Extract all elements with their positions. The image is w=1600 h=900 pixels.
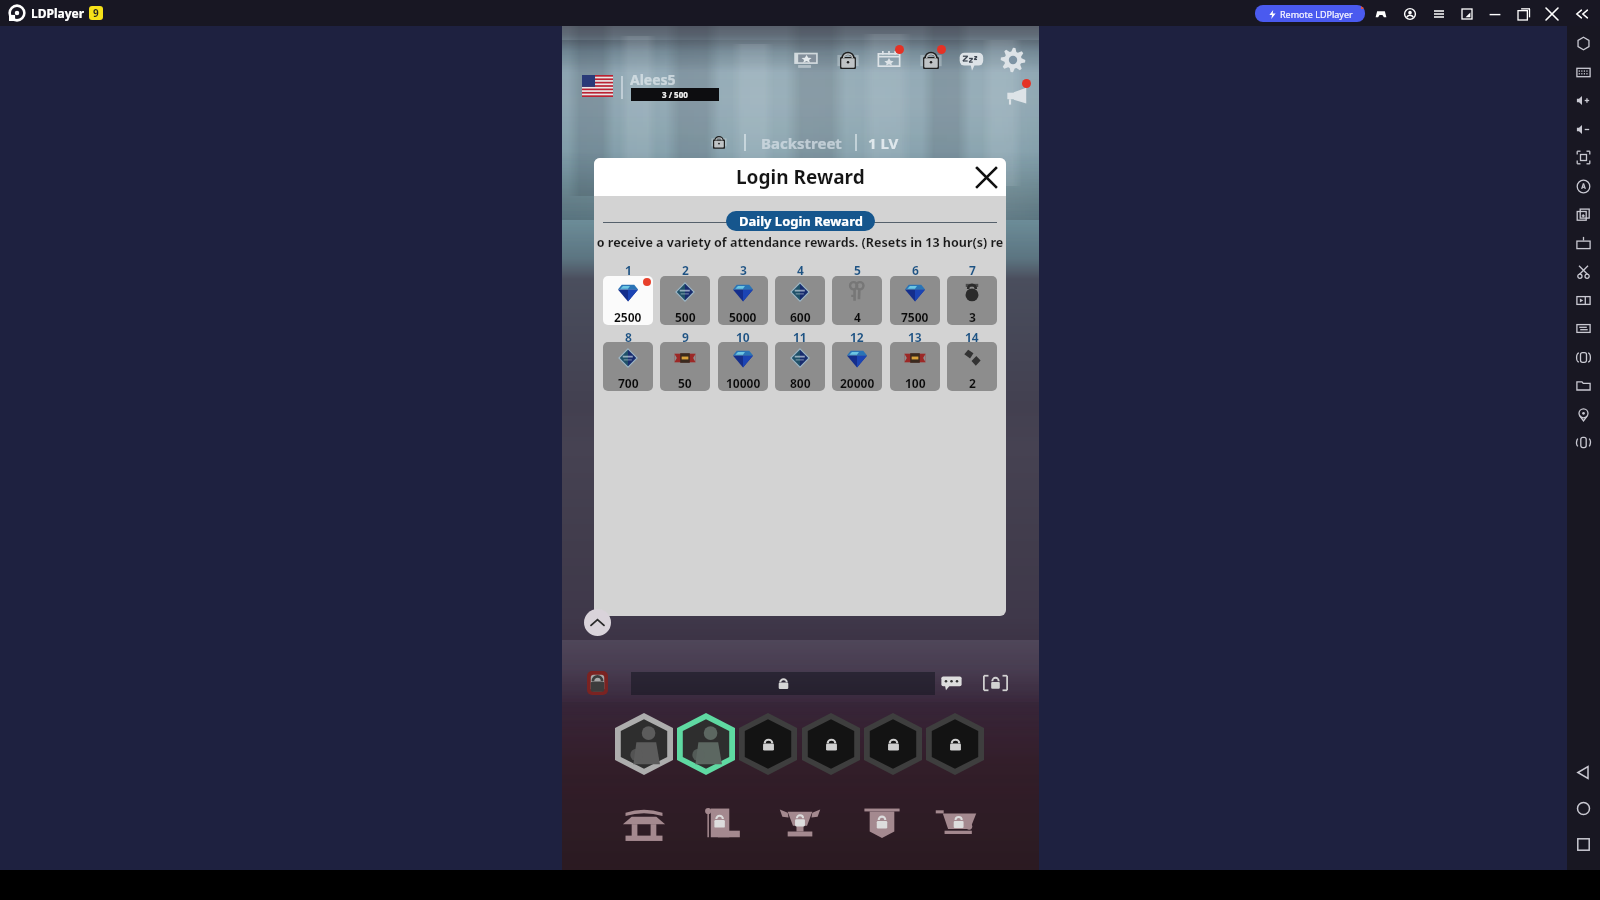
button[interactable]: Shop bbox=[926, 796, 986, 848]
staticText: 2 bbox=[682, 262, 689, 278]
button[interactable]: Stage locked bbox=[709, 132, 729, 152]
button[interactable]: 600 bbox=[775, 276, 825, 325]
button[interactable]: Settings bbox=[999, 46, 1027, 74]
button[interactable]: Keyboard bbox=[1567, 59, 1600, 85]
staticText: Alees5 bbox=[630, 70, 676, 89]
button[interactable]: Home bbox=[614, 796, 674, 848]
staticText: o receive a variety of attendance reward… bbox=[594, 234, 1006, 251]
button[interactable]: Profile bbox=[587, 671, 608, 695]
staticText: 11 bbox=[793, 329, 807, 345]
button[interactable]: Multi instance bbox=[1567, 201, 1600, 227]
staticText: 13 bbox=[908, 329, 922, 345]
button[interactable]: Cut bbox=[1567, 258, 1600, 284]
button[interactable]: 4 bbox=[832, 276, 882, 325]
staticText: Login Reward bbox=[736, 164, 865, 190]
button[interactable]: 2 bbox=[947, 342, 997, 391]
button[interactable]: Restore down bbox=[1458, 5, 1476, 23]
staticText: 500 bbox=[675, 309, 696, 325]
button[interactable]: Daily Login Reward bbox=[726, 211, 875, 231]
button[interactable]: Close bbox=[973, 164, 999, 190]
button[interactable]: 5000 bbox=[718, 276, 768, 325]
button[interactable]: Screenshot bbox=[1567, 144, 1600, 170]
button[interactable]: Home bbox=[1567, 793, 1600, 823]
button[interactable]: Recents bbox=[1567, 829, 1600, 859]
staticText: 1 bbox=[625, 262, 632, 278]
button[interactable]: Slot 5 bbox=[862, 712, 924, 776]
button[interactable]: Maximize bbox=[1515, 5, 1533, 23]
button[interactable]: Collapse bbox=[1573, 5, 1591, 23]
button[interactable]: Account bbox=[1401, 5, 1419, 23]
button[interactable]: Remote LDPlayer bbox=[1255, 5, 1365, 22]
button[interactable]: 7500 bbox=[890, 276, 940, 325]
staticText: 800 bbox=[790, 375, 811, 391]
button[interactable]: Back bbox=[1567, 757, 1600, 787]
button[interactable]: Pass bbox=[792, 46, 820, 74]
button[interactable]: Location bbox=[1567, 401, 1600, 427]
staticText: 3 bbox=[969, 309, 976, 325]
staticText: 10 bbox=[736, 329, 750, 345]
button[interactable]: Locked gift bbox=[917, 46, 945, 74]
staticText: 4 bbox=[797, 262, 804, 278]
button[interactable]: Gamepad bbox=[1372, 5, 1390, 23]
button[interactable]: 10000 bbox=[718, 342, 768, 391]
staticText: 600 bbox=[790, 309, 811, 325]
staticText: 6 bbox=[912, 262, 919, 278]
button[interactable]: Minimize bbox=[1486, 5, 1504, 23]
button[interactable]: Record bbox=[1567, 287, 1600, 313]
button[interactable]: Chat input locked bbox=[631, 672, 935, 695]
staticText: 700 bbox=[618, 375, 639, 391]
staticText: 2500 bbox=[614, 309, 642, 325]
button[interactable]: Menu bbox=[1430, 5, 1448, 23]
button[interactable]: Guild bbox=[852, 796, 912, 848]
staticText: 100 bbox=[905, 375, 926, 391]
button[interactable]: 100 bbox=[890, 342, 940, 391]
button[interactable]: Full screen bbox=[1567, 30, 1600, 56]
staticText: 4 bbox=[854, 309, 861, 325]
button[interactable]: 700 bbox=[603, 342, 653, 391]
button[interactable]: Events bbox=[875, 46, 903, 74]
staticText: 9 bbox=[93, 6, 99, 20]
staticText: 3 bbox=[740, 262, 747, 278]
button[interactable]: Volume up bbox=[1567, 87, 1600, 113]
staticText: 5 bbox=[854, 262, 861, 278]
button[interactable]: Locked shop bbox=[834, 46, 862, 74]
button[interactable]: Versus bbox=[770, 796, 830, 848]
staticText: 1 LV bbox=[868, 133, 899, 153]
staticText: 50 bbox=[678, 375, 692, 391]
staticText: 12 bbox=[850, 329, 864, 345]
staticText: 3 / 500 bbox=[662, 89, 688, 100]
button[interactable]: Chat bbox=[940, 671, 963, 694]
button[interactable]: 2500 bbox=[603, 276, 653, 325]
staticText: 7500 bbox=[901, 309, 929, 325]
staticText: 2 bbox=[969, 375, 976, 391]
button[interactable]: Files bbox=[1567, 372, 1600, 398]
staticText: 20000 bbox=[840, 375, 875, 391]
button[interactable]: Slot 4 bbox=[800, 712, 862, 776]
button[interactable]: Collapse bbox=[584, 609, 611, 636]
button[interactable]: Slot 1 bbox=[613, 712, 675, 776]
button[interactable]: Slot 2 bbox=[675, 712, 737, 776]
button[interactable]: Sync bbox=[1567, 315, 1600, 341]
button[interactable]: 3 bbox=[947, 276, 997, 325]
button[interactable]: Close bbox=[1543, 5, 1561, 23]
button[interactable]: Volume down bbox=[1567, 116, 1600, 142]
button[interactable]: 500 bbox=[660, 276, 710, 325]
staticText: 10000 bbox=[726, 375, 761, 391]
staticText: 9 bbox=[682, 329, 689, 345]
button[interactable]: Shake bbox=[1567, 429, 1600, 455]
button[interactable]: Auto rotate bbox=[1567, 173, 1600, 199]
button[interactable]: Slot 6 bbox=[924, 712, 986, 776]
button[interactable]: Board bbox=[694, 796, 754, 848]
button[interactable]: Slot 3 bbox=[737, 712, 799, 776]
button[interactable]: 20000 bbox=[832, 342, 882, 391]
button[interactable]: Screenshot bbox=[982, 670, 1009, 696]
button[interactable]: Install APK bbox=[1567, 230, 1600, 256]
button[interactable]: 50 bbox=[660, 342, 710, 391]
staticText: 8 bbox=[625, 329, 632, 345]
button[interactable]: 800 bbox=[775, 342, 825, 391]
staticText: Backstreet bbox=[761, 133, 842, 153]
button[interactable]: Announcements bbox=[1003, 83, 1030, 110]
button[interactable]: Rotate bbox=[1567, 344, 1600, 370]
button[interactable]: Idle rewards bbox=[958, 46, 986, 74]
staticText: Daily Login Reward bbox=[739, 212, 863, 230]
